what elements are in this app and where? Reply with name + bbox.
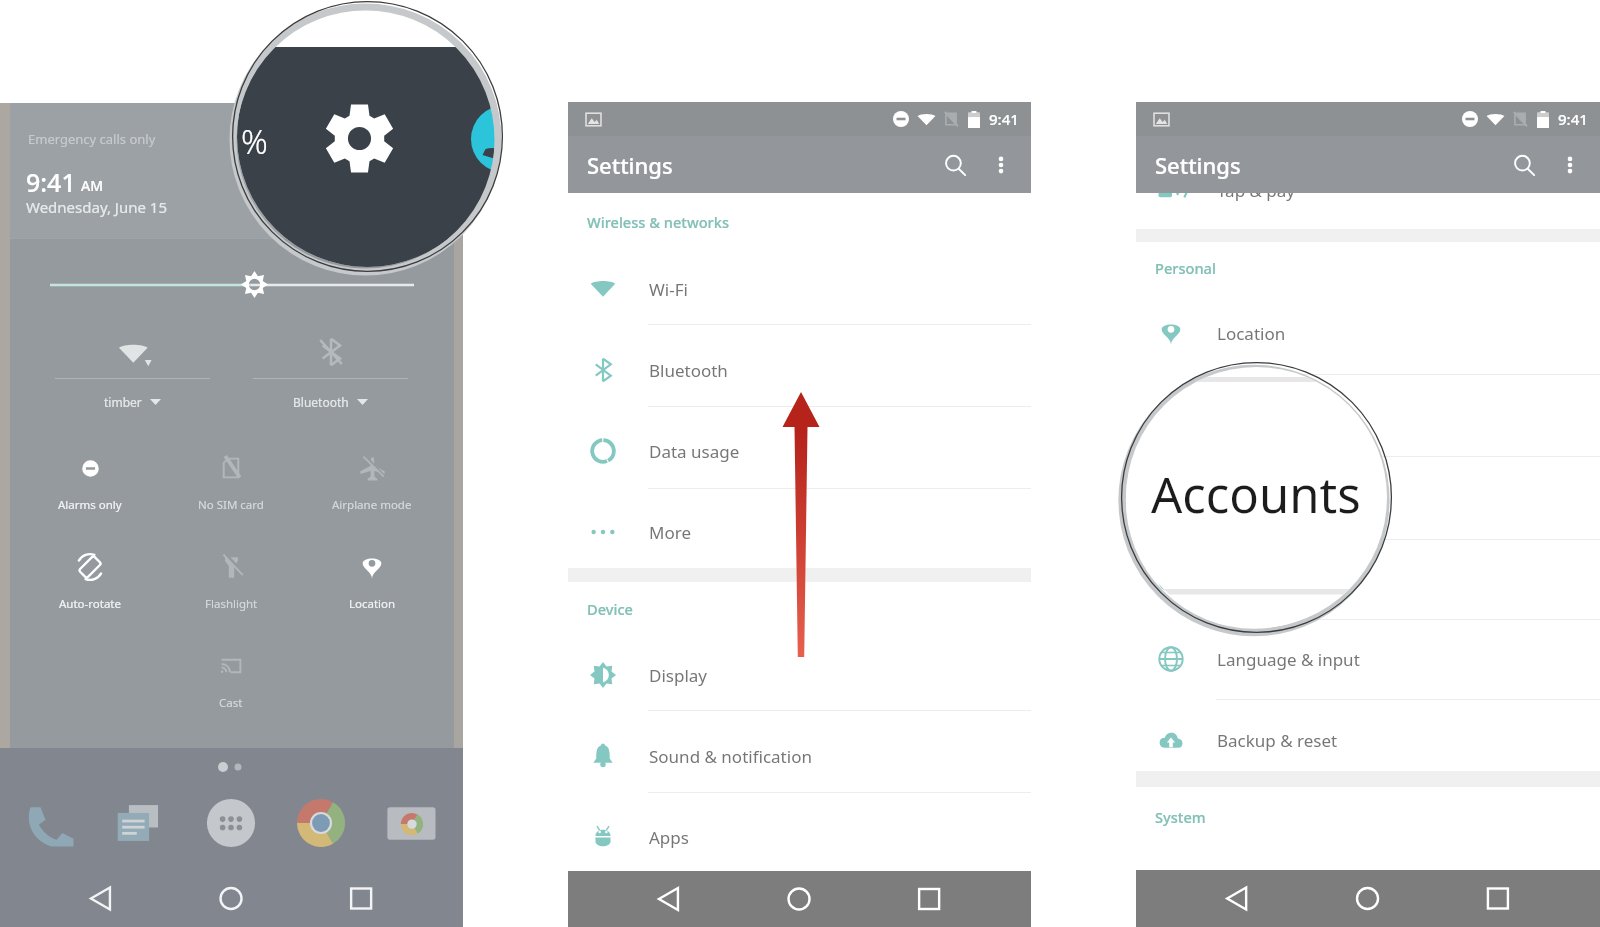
button[interactable]: Location [302, 537, 442, 609]
button[interactable]: Home [723, 871, 876, 927]
staticText: Language & input [1217, 648, 1360, 671]
button[interactable]: Search [1500, 141, 1548, 189]
staticText: Emergency calls only [28, 130, 156, 148]
button[interactable]: Flashlight [161, 537, 301, 609]
staticText: Location [349, 596, 396, 612]
staticText: Wi-Fi [649, 278, 688, 301]
button[interactable]: Back [1136, 870, 1289, 927]
button[interactable]: Back [568, 871, 721, 927]
staticText: Device [587, 599, 633, 619]
staticText: AM [81, 176, 104, 195]
button[interactable]: Search [931, 141, 979, 189]
staticText: Tap & pay [1217, 179, 1296, 202]
staticText: More [649, 521, 691, 544]
button[interactable]: More options [979, 143, 1023, 187]
button[interactable]: Back [0, 870, 153, 927]
staticText: % [241, 119, 268, 164]
button[interactable]: Bluetooth [568, 330, 1031, 410]
staticText: 9:41 [26, 165, 76, 199]
staticText: Accounts [1151, 461, 1361, 528]
button[interactable]: Recents [878, 871, 1031, 927]
button[interactable]: Home [1292, 870, 1445, 927]
staticText: 9:41 [1558, 109, 1588, 129]
staticText: Settings [1155, 150, 1241, 180]
button[interactable]: Tap & pay [1136, 162, 1600, 218]
staticText: System [1155, 807, 1206, 827]
button[interactable]: Apps [568, 797, 1031, 877]
staticText: Google [1217, 568, 1275, 591]
staticText: Settings [587, 150, 673, 180]
button[interactable]: Cast [161, 636, 301, 708]
button[interactable]: Recents [1447, 870, 1600, 927]
staticText: Cast [219, 695, 243, 711]
staticText: Bluetooth [293, 394, 349, 410]
button[interactable]: No SIM card [161, 438, 301, 510]
button[interactable]: Display [568, 635, 1031, 715]
button[interactable]: Wi-Fi [568, 249, 1031, 329]
staticText: No SIM card [198, 497, 264, 513]
staticText: Wednesday, June 15 [26, 197, 168, 217]
staticText: Flashlight [205, 596, 258, 612]
staticText: Accounts [1217, 486, 1290, 509]
staticText: Data usage [649, 440, 740, 463]
button[interactable]: More [568, 492, 1031, 572]
button[interactable]: Data usage [568, 411, 1031, 491]
staticText: Auto-rotate [59, 596, 121, 612]
button[interactable]: Backup & reset [1136, 700, 1600, 780]
button[interactable]: Recents [310, 870, 463, 927]
button[interactable]: Sound & notification [568, 716, 1031, 796]
button[interactable]: Security [1136, 375, 1600, 455]
staticText: Bluetooth [649, 359, 728, 382]
staticText: timber [104, 394, 142, 410]
staticText: Alarms only [58, 497, 122, 513]
button[interactable]: Google [1136, 539, 1600, 619]
staticText: 9:41 [989, 109, 1019, 129]
button[interactable]: Home [155, 870, 308, 927]
staticText: Location [1217, 322, 1286, 345]
button[interactable]: Airplane mode [302, 438, 442, 510]
staticText: Wireless & networks [587, 212, 730, 232]
staticText: Display [649, 664, 707, 687]
button[interactable]: Auto-rotate [20, 537, 160, 609]
button[interactable]: Language & input [1136, 619, 1600, 699]
staticText: Airplane mode [332, 497, 412, 513]
staticText: Sound & notification [649, 745, 812, 768]
button[interactable]: Location [1136, 293, 1600, 373]
staticText: Backup & reset [1217, 729, 1338, 752]
button[interactable]: More options [1548, 143, 1592, 187]
staticText: Personal [1155, 258, 1216, 278]
button[interactable]: Accounts [1136, 457, 1600, 537]
staticText: Apps [649, 826, 689, 849]
button[interactable]: Alarms only [20, 438, 160, 510]
